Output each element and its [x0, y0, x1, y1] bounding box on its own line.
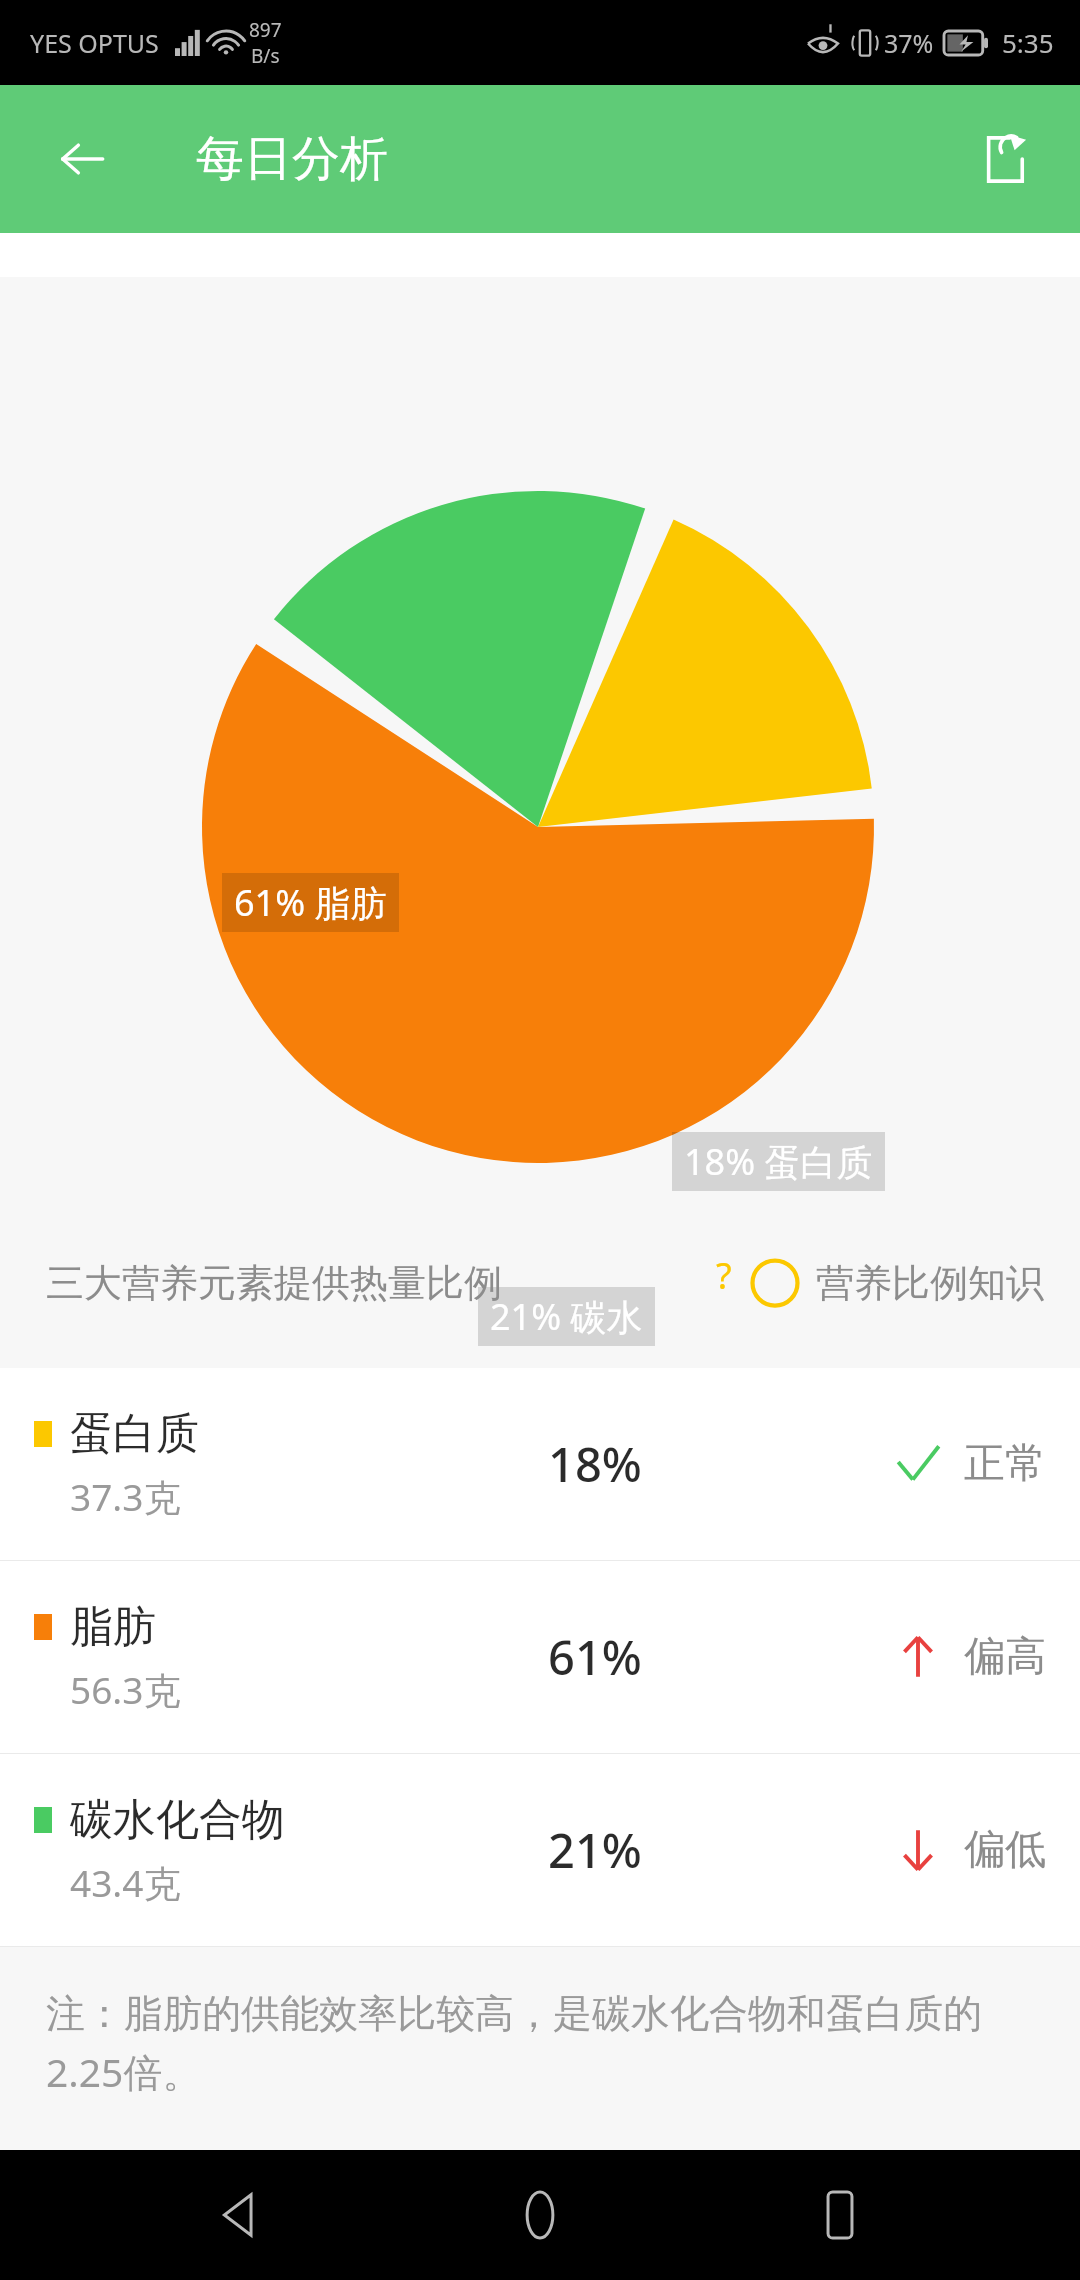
- button[interactable]: 碳水化合物: [0, 1754, 1080, 1946]
- staticText: 注：脂肪的供能效率比较高，是碳水化合物和蛋白质的2.25倍。: [46, 1989, 1034, 2098]
- staticText: 三大营养元素提供热量比例: [46, 1259, 502, 1307]
- staticText: 营养比例知识: [816, 1259, 1044, 1307]
- button[interactable]: Share: [964, 119, 1044, 199]
- staticText: 43.4克: [70, 1857, 181, 1908]
- button[interactable]: 营养比例知识: [750, 1258, 1080, 1308]
- staticText: 37%: [884, 26, 934, 60]
- staticText: 21% 碳水: [490, 1292, 643, 1341]
- staticText: 每日分析: [196, 129, 388, 189]
- button[interactable]: Back: [180, 2155, 300, 2275]
- staticText: 脂肪: [70, 1600, 156, 1654]
- staticText: 正常: [964, 1438, 1046, 1490]
- staticText: 18% 蛋白质: [684, 1137, 873, 1186]
- staticText: ?: [716, 1251, 732, 1300]
- staticText: 蛋白质: [70, 1407, 199, 1461]
- staticText: 偏低: [964, 1824, 1046, 1876]
- button[interactable]: Recent apps: [780, 2155, 900, 2275]
- staticText: B/s: [251, 43, 280, 69]
- staticText: 61% 脂肪: [234, 878, 387, 927]
- button[interactable]: 蛋白质: [0, 1368, 1080, 1560]
- staticText: YES OPTUS: [30, 26, 159, 60]
- button[interactable]: Home: [480, 2155, 600, 2275]
- staticText: 18%: [548, 1432, 642, 1496]
- staticText: 37.3克: [70, 1471, 181, 1522]
- button[interactable]: 脂肪: [0, 1561, 1080, 1753]
- staticText: 碳水化合物: [70, 1793, 285, 1847]
- button[interactable]: Back: [44, 121, 120, 197]
- staticText: 61%: [548, 1625, 642, 1689]
- staticText: 21%: [548, 1818, 642, 1882]
- staticText: 偏高: [964, 1631, 1046, 1683]
- staticText: 5:35: [1002, 25, 1054, 60]
- staticText: 56.3克: [70, 1664, 181, 1715]
- staticText: 897: [249, 17, 282, 43]
